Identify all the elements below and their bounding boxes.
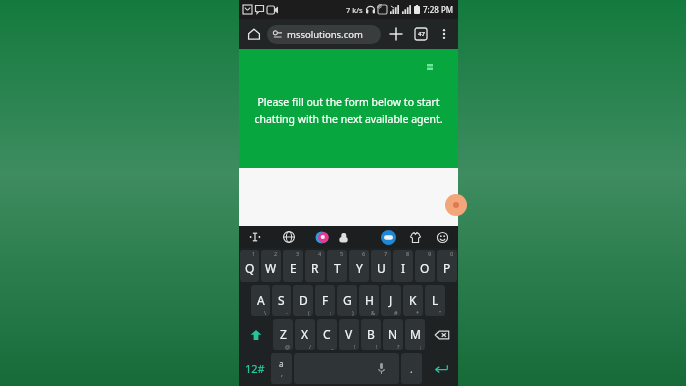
staticText: 7: [384, 250, 388, 257]
staticText: N: [388, 326, 398, 342]
staticText: 12#: [245, 361, 265, 376]
button[interactable]: 7: [371, 250, 391, 282]
staticText: O: [420, 260, 430, 276]
button[interactable]: Input options: [271, 353, 292, 384]
button[interactable]: Space: [294, 353, 399, 384]
button[interactable]: Stickers: [315, 230, 329, 244]
button[interactable]: F: [315, 285, 335, 316]
button[interactable]: M: [405, 319, 425, 350]
staticText: /: [309, 343, 312, 350]
staticText: 7 k/s: [346, 5, 363, 15]
staticText: ): [352, 309, 354, 316]
button[interactable]: 3: [283, 250, 303, 282]
staticText: Y: [356, 260, 363, 276]
staticText: L: [432, 292, 439, 308]
button[interactable]: 0: [437, 250, 457, 282]
button[interactable]: N: [383, 319, 403, 350]
button[interactable]: B: [361, 319, 381, 350]
button[interactable]: Backspace: [427, 319, 457, 350]
staticText: C: [323, 326, 331, 342]
staticText: J: [389, 292, 393, 308]
button[interactable]: Themes: [408, 230, 423, 245]
button[interactable]: X: [295, 319, 315, 350]
staticText: S: [278, 292, 285, 308]
staticText: R: [311, 260, 319, 276]
staticText: 9: [428, 250, 432, 257]
button[interactable]: L: [425, 285, 445, 316]
button[interactable]: J: [381, 285, 401, 316]
staticText: ?: [397, 343, 400, 350]
button[interactable]: Shift: [240, 319, 271, 350]
staticText: F: [322, 292, 329, 308]
staticText: ,: [281, 369, 283, 379]
staticText: 47: [418, 30, 425, 38]
staticText: #: [394, 309, 398, 316]
button[interactable]: Language: [281, 229, 297, 245]
button[interactable]: Handwriting: [335, 229, 351, 245]
staticText: a: [279, 358, 284, 369]
button[interactable]: Games: [381, 230, 396, 245]
staticText: E: [290, 260, 297, 276]
button[interactable]: S: [272, 285, 291, 316]
button[interactable]: Close chat: [424, 61, 436, 73]
button[interactable]: G: [337, 285, 357, 316]
button[interactable]: 2: [261, 250, 281, 282]
button[interactable]: 5: [327, 250, 347, 282]
button[interactable]: 1: [240, 250, 259, 282]
staticText: V: [345, 326, 353, 342]
staticText: I: [401, 260, 406, 276]
staticText: H: [365, 292, 374, 308]
button[interactable]: V: [339, 319, 359, 350]
button[interactable]: 12#: [240, 353, 269, 384]
button[interactable]: Chat agent: [445, 194, 467, 216]
staticText: T: [334, 260, 341, 276]
staticText: 5: [340, 250, 344, 257]
staticText: 1: [252, 250, 256, 257]
staticText: ": [439, 309, 442, 316]
button[interactable]: Emoji: [435, 230, 450, 245]
staticText: Please fill out the form below to start …: [253, 95, 444, 126]
button[interactable]: H: [359, 285, 379, 316]
button[interactable]: .: [401, 353, 422, 384]
staticText: 6: [362, 250, 366, 257]
staticText: mssolutions.com: [287, 28, 363, 41]
staticText: !: [376, 343, 378, 350]
button[interactable]: mssolutions.com: [267, 25, 381, 44]
button[interactable]: 8: [393, 250, 413, 282]
button[interactable]: A: [251, 285, 270, 316]
button[interactable]: D: [293, 285, 313, 316]
staticText: \: [264, 309, 267, 316]
staticText: 3: [296, 250, 300, 257]
staticText: Q: [245, 260, 255, 276]
staticText: 2: [274, 250, 278, 257]
button[interactable]: Text cursor: [247, 229, 263, 245]
staticText: ;: [420, 343, 422, 350]
staticText: U: [377, 260, 386, 276]
staticText: &: [371, 309, 376, 316]
staticText: _: [331, 343, 334, 350]
staticText: A: [257, 292, 265, 308]
staticText: Z: [280, 326, 287, 342]
staticText: 8: [406, 250, 410, 257]
button[interactable]: Home: [244, 24, 264, 44]
button[interactable]: 4: [305, 250, 325, 282]
staticText: P: [443, 260, 451, 276]
staticText: :: [330, 309, 332, 316]
button[interactable]: Z: [273, 319, 293, 350]
button[interactable]: 9: [415, 250, 435, 282]
button[interactable]: K: [403, 285, 423, 316]
button[interactable]: C: [317, 319, 337, 350]
button[interactable]: Tabs: [410, 23, 432, 45]
button[interactable]: More options: [434, 24, 454, 44]
staticText: *: [416, 309, 420, 316]
staticText: D: [299, 292, 308, 308]
staticText: !: [354, 343, 356, 350]
button[interactable]: Enter: [424, 353, 457, 384]
staticText: @: [285, 343, 290, 350]
staticText: B: [367, 326, 375, 342]
button[interactable]: 6: [349, 250, 369, 282]
button[interactable]: New tab: [385, 23, 407, 45]
staticText: 4: [318, 250, 322, 257]
staticText: K: [409, 292, 417, 308]
staticText: 7:28 PM: [423, 4, 454, 15]
